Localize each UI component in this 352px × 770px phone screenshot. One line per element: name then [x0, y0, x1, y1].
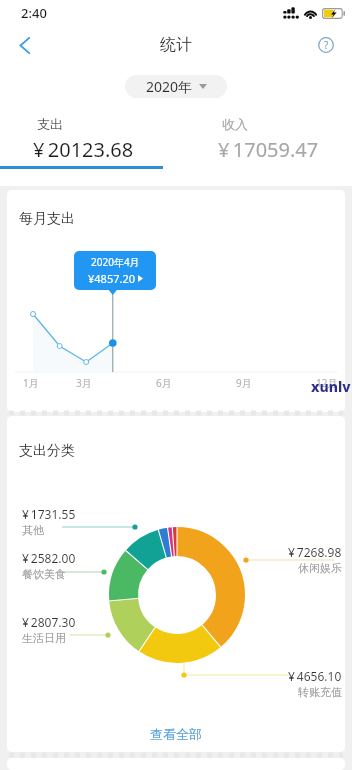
- staticText: 9月: [236, 376, 252, 390]
- staticText: 12月: [316, 376, 338, 390]
- staticText: 转账充值: [298, 685, 342, 699]
- staticText: 支出: [37, 116, 63, 132]
- staticText: ?: [324, 38, 329, 52]
- button[interactable]: 支出: [0, 110, 176, 170]
- staticText: 查看全部: [150, 726, 202, 742]
- staticText: 3月: [76, 376, 92, 390]
- staticText: 2020年4月: [91, 255, 140, 269]
- staticText: ¥ 17059.47: [218, 136, 319, 163]
- staticText: 每月支出: [19, 210, 75, 228]
- staticText: 1月: [23, 376, 39, 390]
- staticText: ¥ 2582.00: [22, 550, 76, 566]
- staticText: ¥ 20123.68: [33, 136, 134, 163]
- staticText: ¥ 4656.10: [288, 668, 342, 684]
- staticText: 2:40: [21, 4, 47, 22]
- staticText: 收入: [222, 116, 248, 132]
- staticText: ¥ 1731.55: [22, 506, 76, 522]
- staticText: 2020年: [146, 77, 193, 96]
- staticText: 其他: [22, 523, 44, 537]
- button[interactable]: Back: [10, 30, 40, 60]
- staticText: 生活日用: [22, 631, 66, 645]
- button[interactable]: 查看全部: [126, 722, 226, 746]
- staticText: 支出分类: [19, 442, 75, 460]
- staticText: 统计: [160, 35, 192, 55]
- button[interactable]: 2020年: [125, 75, 227, 98]
- staticText: ¥ 2807.30: [22, 614, 76, 630]
- staticText: xunlv: [311, 377, 351, 396]
- button[interactable]: Help: [313, 32, 339, 58]
- staticText: 休闲娱乐: [298, 561, 342, 575]
- staticText: 餐饮美食: [22, 567, 66, 581]
- staticText: 6月: [156, 376, 172, 390]
- staticText: ¥4857.20: [88, 271, 135, 286]
- button[interactable]: 收入: [176, 110, 352, 170]
- staticText: ¥ 7268.98: [288, 544, 342, 560]
